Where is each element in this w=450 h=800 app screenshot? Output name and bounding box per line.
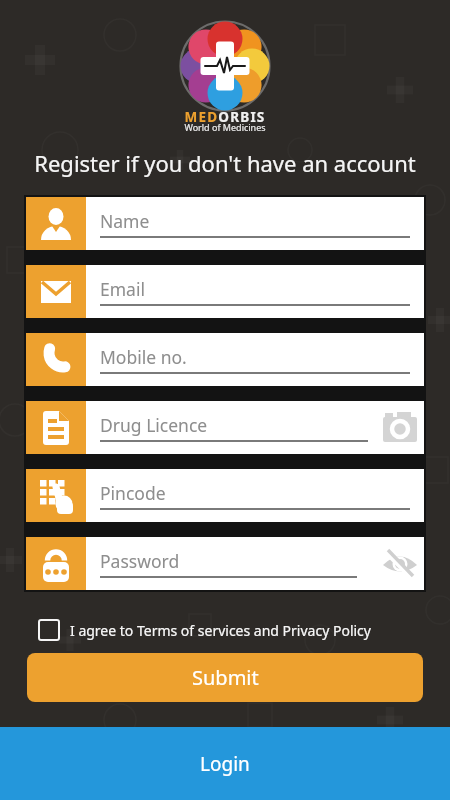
button[interactable]: Pincode	[26, 469, 424, 522]
button[interactable]: Name	[26, 197, 424, 250]
staticText: I agree to Terms of services and Privacy…	[70, 621, 371, 640]
staticText: MEDORBIS	[0, 108, 450, 126]
button[interactable]: I agree to Terms of services and Privacy…	[38, 619, 426, 641]
staticText: Register if you don't have an account	[0, 148, 450, 178]
button[interactable]: Mobile no.	[26, 333, 424, 386]
staticText: Name	[100, 209, 150, 233]
staticText: Mobile no.	[100, 345, 187, 369]
staticText: World of Medicines	[0, 121, 450, 133]
staticText: Login	[200, 751, 250, 777]
button[interactable]: Login	[0, 727, 450, 800]
staticText: Email	[100, 277, 145, 301]
staticText: Pincode	[100, 481, 166, 505]
button[interactable]: Submit	[27, 653, 423, 702]
staticText: Password	[100, 549, 180, 573]
button[interactable]: Password	[26, 537, 424, 590]
button[interactable]: Email	[26, 265, 424, 318]
staticText: Submit	[192, 664, 259, 691]
staticText: Drug Licence	[100, 413, 208, 437]
button[interactable]: Drug Licence	[26, 401, 424, 454]
